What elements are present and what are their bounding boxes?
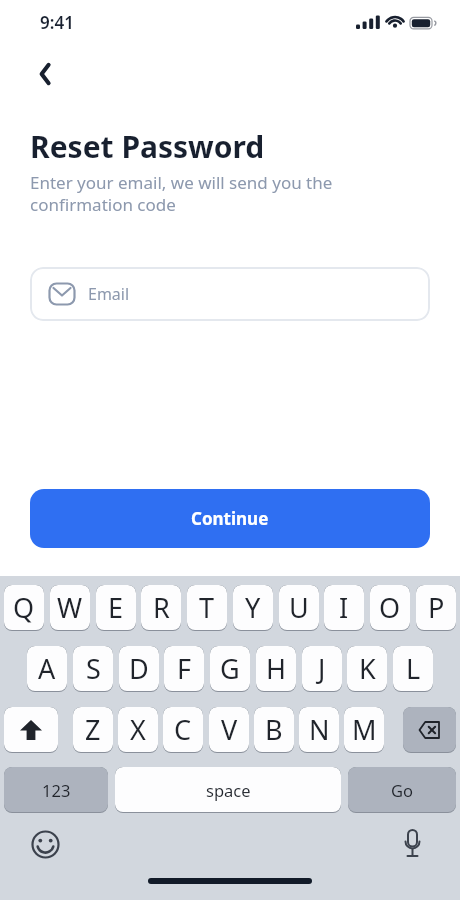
button[interactable]: D — [119, 646, 159, 692]
staticText: Email — [88, 283, 130, 305]
staticText: A — [38, 650, 56, 687]
button[interactable] — [31, 830, 60, 859]
staticText: space — [206, 779, 251, 801]
staticText: H — [266, 650, 287, 687]
button[interactable]: F — [164, 646, 204, 692]
staticText: E — [108, 589, 124, 626]
staticText: O — [379, 589, 401, 626]
staticText: 9:41 — [40, 11, 74, 34]
button[interactable]: B — [254, 707, 294, 753]
staticText: V — [221, 711, 238, 748]
button[interactable] — [403, 829, 422, 859]
button[interactable] — [403, 707, 456, 753]
staticText: K — [359, 650, 376, 687]
button[interactable]: P — [416, 585, 456, 631]
staticText: F — [177, 650, 192, 687]
button[interactable]: T — [187, 585, 227, 631]
staticText: B — [265, 711, 283, 748]
staticText: R — [153, 589, 170, 626]
staticText: L — [406, 650, 421, 687]
button[interactable]: Email — [30, 267, 430, 321]
button[interactable]: Continue — [30, 489, 430, 548]
staticText: W — [57, 589, 83, 626]
button[interactable]: H — [256, 646, 296, 692]
button[interactable] — [32, 60, 60, 88]
button[interactable]: U — [279, 585, 319, 631]
staticText: Continue — [191, 507, 269, 530]
staticText: U — [289, 589, 309, 626]
staticText: Reset Password — [30, 126, 265, 167]
staticText: I — [339, 589, 349, 626]
staticText: D — [129, 650, 149, 687]
button[interactable]: Y — [233, 585, 273, 631]
button[interactable]: V — [209, 707, 249, 753]
button[interactable]: M — [344, 707, 384, 753]
button[interactable]: X — [118, 707, 158, 753]
staticText: T — [199, 589, 215, 626]
button[interactable]: N — [299, 707, 339, 753]
button[interactable]: K — [347, 646, 387, 692]
staticText: Enter your email, we will send you the c… — [30, 171, 333, 216]
button[interactable]: O — [370, 585, 410, 631]
button[interactable]: G — [210, 646, 250, 692]
button[interactable]: 123 — [4, 767, 108, 813]
staticText: Go — [391, 779, 413, 801]
button[interactable]: Go — [348, 767, 456, 813]
button[interactable]: E — [96, 585, 136, 631]
staticText: Z — [85, 711, 101, 748]
button[interactable]: L — [393, 646, 433, 692]
button[interactable]: space — [115, 767, 341, 813]
button[interactable]: J — [302, 646, 342, 692]
staticText: N — [309, 711, 330, 748]
button[interactable] — [4, 707, 58, 753]
button[interactable]: C — [163, 707, 203, 753]
staticText: J — [318, 650, 326, 687]
staticText: 123 — [42, 779, 71, 801]
button[interactable]: Q — [4, 585, 44, 631]
button[interactable]: W — [50, 585, 90, 631]
staticText: S — [86, 650, 101, 687]
button[interactable]: A — [27, 646, 67, 692]
staticText: M — [352, 711, 377, 748]
button[interactable]: Z — [73, 707, 113, 753]
staticText: Q — [13, 589, 35, 626]
staticText: X — [130, 711, 146, 748]
button[interactable]: I — [324, 585, 364, 631]
staticText: P — [428, 589, 445, 626]
button[interactable]: R — [141, 585, 181, 631]
button[interactable]: S — [73, 646, 113, 692]
staticText: G — [220, 650, 240, 687]
staticText: C — [174, 711, 192, 748]
staticText: Y — [245, 589, 261, 626]
